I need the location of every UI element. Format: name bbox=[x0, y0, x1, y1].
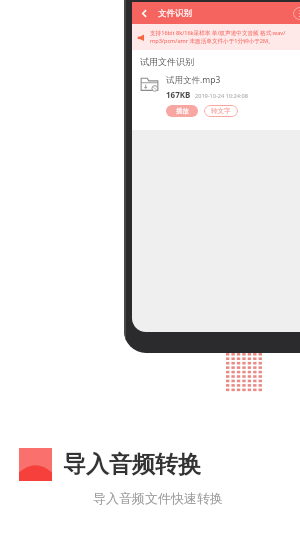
staticText: 播放 bbox=[176, 107, 189, 115]
staticText: 导入音频文件快速转换 bbox=[93, 490, 223, 506]
staticText: 导入音频转换 bbox=[63, 450, 201, 479]
staticText: 选择 bbox=[299, 9, 300, 18]
staticText: 转文字 bbox=[211, 107, 231, 115]
staticText: mp3/pcm/amr 未激活单文件小于1分钟小于2M。 bbox=[150, 37, 274, 45]
staticText: 试用文件识别 bbox=[140, 56, 194, 67]
button[interactable]: 转文字 bbox=[204, 105, 238, 117]
staticText: 2019-10-24 10:24:08 bbox=[195, 92, 248, 100]
button[interactable]: 播放 bbox=[166, 105, 198, 117]
staticText: 文件识别 bbox=[158, 8, 192, 19]
button[interactable]: 选择 bbox=[293, 7, 300, 20]
staticText: 支持16bit 8k/16k采样率 单/双声道中文音频 格式:wav/ bbox=[150, 29, 286, 37]
button[interactable]: Back bbox=[136, 5, 152, 21]
staticText: 试用文件.mp3 bbox=[166, 74, 221, 86]
staticText: 167KB bbox=[166, 89, 191, 100]
